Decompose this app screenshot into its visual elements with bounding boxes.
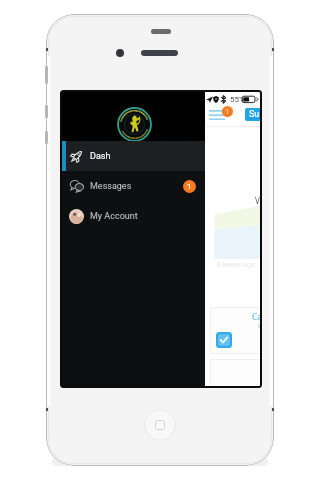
staticText: 55% bbox=[230, 95, 245, 104]
staticText: Dash bbox=[90, 151, 111, 162]
button[interactable] bbox=[210, 307, 260, 354]
button[interactable]: Su bbox=[245, 108, 260, 121]
staticText: 1 bbox=[187, 182, 192, 191]
staticText: v bbox=[258, 321, 260, 331]
staticText: Su bbox=[249, 109, 260, 120]
button[interactable]: Dash bbox=[62, 141, 205, 171]
button[interactable]: Open navigation menu bbox=[209, 110, 225, 121]
button[interactable]: Home bbox=[144, 409, 176, 441]
button[interactable]: My Account bbox=[62, 201, 205, 231]
staticText: 1 bbox=[225, 107, 230, 116]
staticText: V bbox=[255, 195, 260, 206]
button[interactable] bbox=[210, 359, 260, 386]
button[interactable]: Completed bbox=[216, 332, 232, 348]
button[interactable]: Messages bbox=[62, 171, 205, 201]
staticText: Messages bbox=[90, 181, 132, 192]
staticText: Ca bbox=[252, 311, 260, 323]
staticText: My Account bbox=[90, 211, 138, 222]
staticText: 6 weeks ago bbox=[217, 260, 255, 269]
